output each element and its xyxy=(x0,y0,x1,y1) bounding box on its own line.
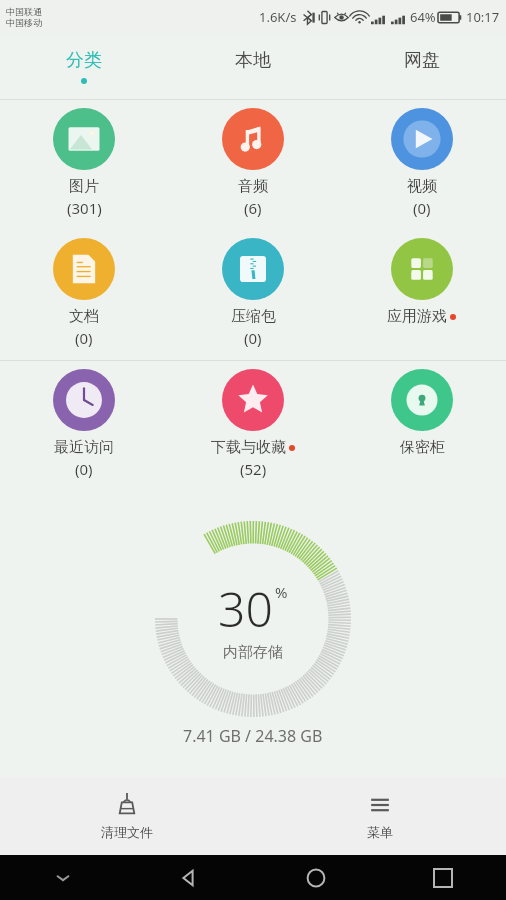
button[interactable]: Back xyxy=(126,855,252,900)
staticText: 30 xyxy=(218,576,273,641)
staticText: 10:17 xyxy=(466,8,500,26)
staticText: 图片 xyxy=(69,177,99,196)
staticText: (6) xyxy=(244,198,262,218)
staticText: 网盘 xyxy=(404,49,440,72)
staticText: 应用游戏 xyxy=(387,307,447,326)
button[interactable]: Recent apps xyxy=(379,855,506,900)
staticText: 保密柜 xyxy=(400,438,445,457)
staticText: 本地 xyxy=(235,49,271,72)
button[interactable]: 最近访问 xyxy=(0,361,168,491)
button[interactable]: 文档 xyxy=(0,230,168,360)
staticText: 64% xyxy=(410,8,436,26)
button[interactable]: 应用游戏 xyxy=(337,230,506,360)
staticText: 中国联通 xyxy=(6,6,42,17)
staticText: 1.6K/s xyxy=(259,8,297,26)
button[interactable]: Home xyxy=(252,855,379,900)
button[interactable]: 网盘 xyxy=(337,34,506,99)
staticText: 最近访问 xyxy=(54,438,114,457)
staticText: % xyxy=(275,582,288,602)
staticText: 文档 xyxy=(69,307,99,326)
button[interactable]: 本地 xyxy=(168,34,337,99)
staticText: 视频 xyxy=(407,177,437,196)
staticText: (0) xyxy=(244,328,262,348)
staticText: (52) xyxy=(240,459,267,479)
button[interactable]: 下载与收藏 xyxy=(168,361,337,491)
button[interactable]: 清理文件 xyxy=(0,777,253,855)
button[interactable]: 菜单 xyxy=(253,777,506,855)
staticText: 7.41 GB / 24.38 GB xyxy=(183,725,323,747)
button[interactable]: 视频 xyxy=(337,100,506,230)
staticText: 压缩包 xyxy=(231,307,276,326)
button[interactable]: 保密柜 xyxy=(337,361,506,491)
staticText: (301) xyxy=(67,198,102,218)
staticText: (0) xyxy=(413,198,431,218)
staticText: 清理文件 xyxy=(101,824,153,840)
button[interactable]: 音频 xyxy=(168,100,337,230)
button[interactable]: 压缩包 xyxy=(168,230,337,360)
button[interactable]: Hide keyboard xyxy=(0,855,126,900)
staticText: 分类 xyxy=(66,49,102,72)
staticText: 中国移动 xyxy=(6,17,42,28)
staticText: 音频 xyxy=(238,177,268,196)
staticText: (0) xyxy=(75,459,93,479)
staticText: 下载与收藏 xyxy=(211,438,286,457)
staticText: 菜单 xyxy=(367,824,393,840)
staticText: (0) xyxy=(75,328,93,348)
button[interactable]: 分类 xyxy=(0,34,168,99)
button[interactable]: 图片 xyxy=(0,100,168,230)
staticText: 内部存储 xyxy=(223,643,283,662)
